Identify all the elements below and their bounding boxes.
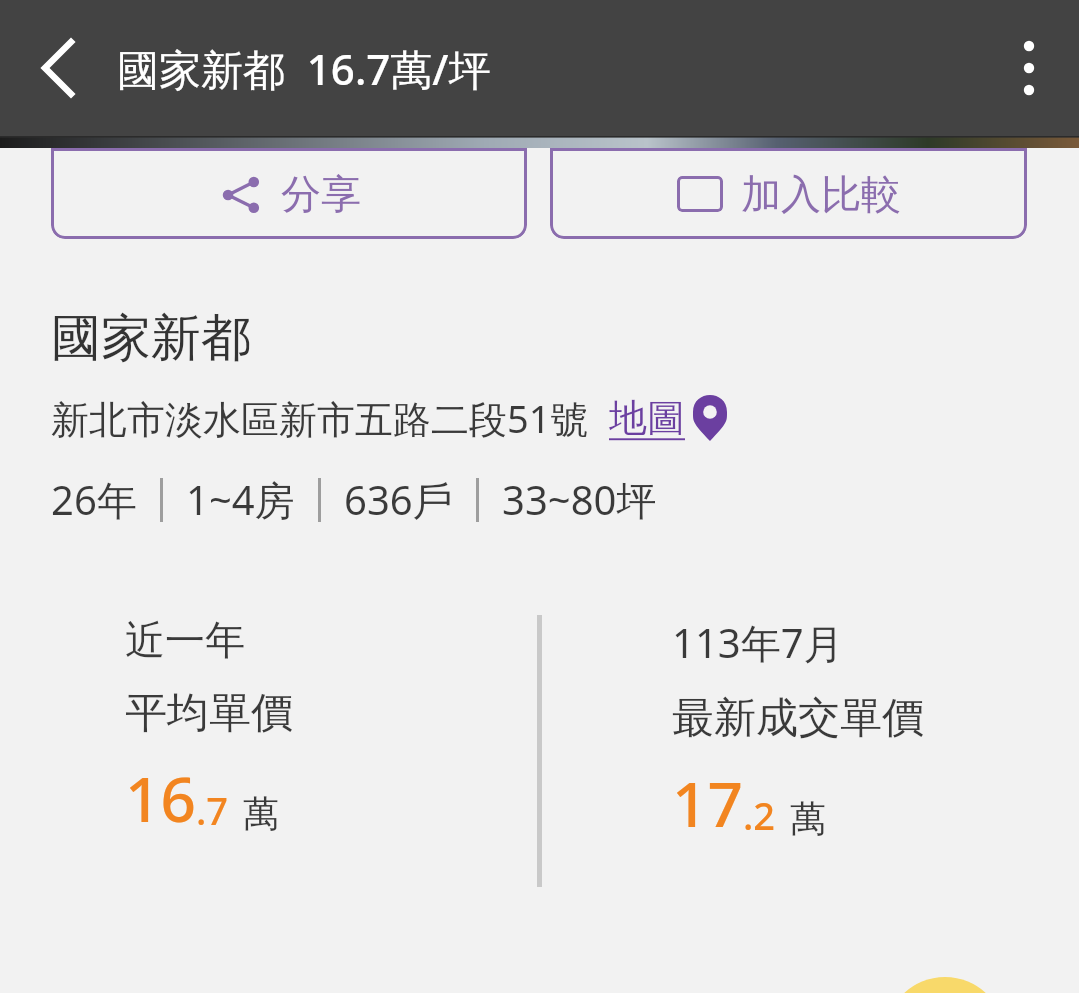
staticText: 26年 [51,472,137,527]
staticText: 33~80坪 [502,472,657,527]
staticText: 16 [125,756,196,840]
staticText: 國家新都 [51,307,251,370]
staticText: 加入比較 [741,169,901,219]
staticText: .2 [743,789,776,841]
button[interactable]: 地圖 [609,394,727,442]
staticText: 1~4房 [186,472,295,527]
staticText: 113年7月 [672,615,844,670]
button[interactable]: 分享 [51,148,527,239]
staticText: 636戶 [344,472,453,527]
staticText: 平均單價 [125,687,293,740]
staticText: 萬 [790,796,826,841]
button[interactable]: Back [22,30,98,106]
button[interactable]: 加入比較 [550,148,1027,239]
staticText: 國家新都 16.7萬/坪 [117,40,491,97]
button[interactable]: More options [991,30,1067,106]
staticText: 17 [672,761,743,845]
staticText: 萬 [243,791,279,836]
staticText: 最新成交單價 [672,692,924,745]
staticText: 分享 [281,169,361,219]
staticText: 近一年 [125,615,245,665]
staticText: .7 [196,784,229,836]
staticText: 新北市淡水區新市五路二段51號 [51,392,589,444]
staticText: 地圖 [609,394,685,442]
button[interactable]: Chat [885,977,1005,993]
